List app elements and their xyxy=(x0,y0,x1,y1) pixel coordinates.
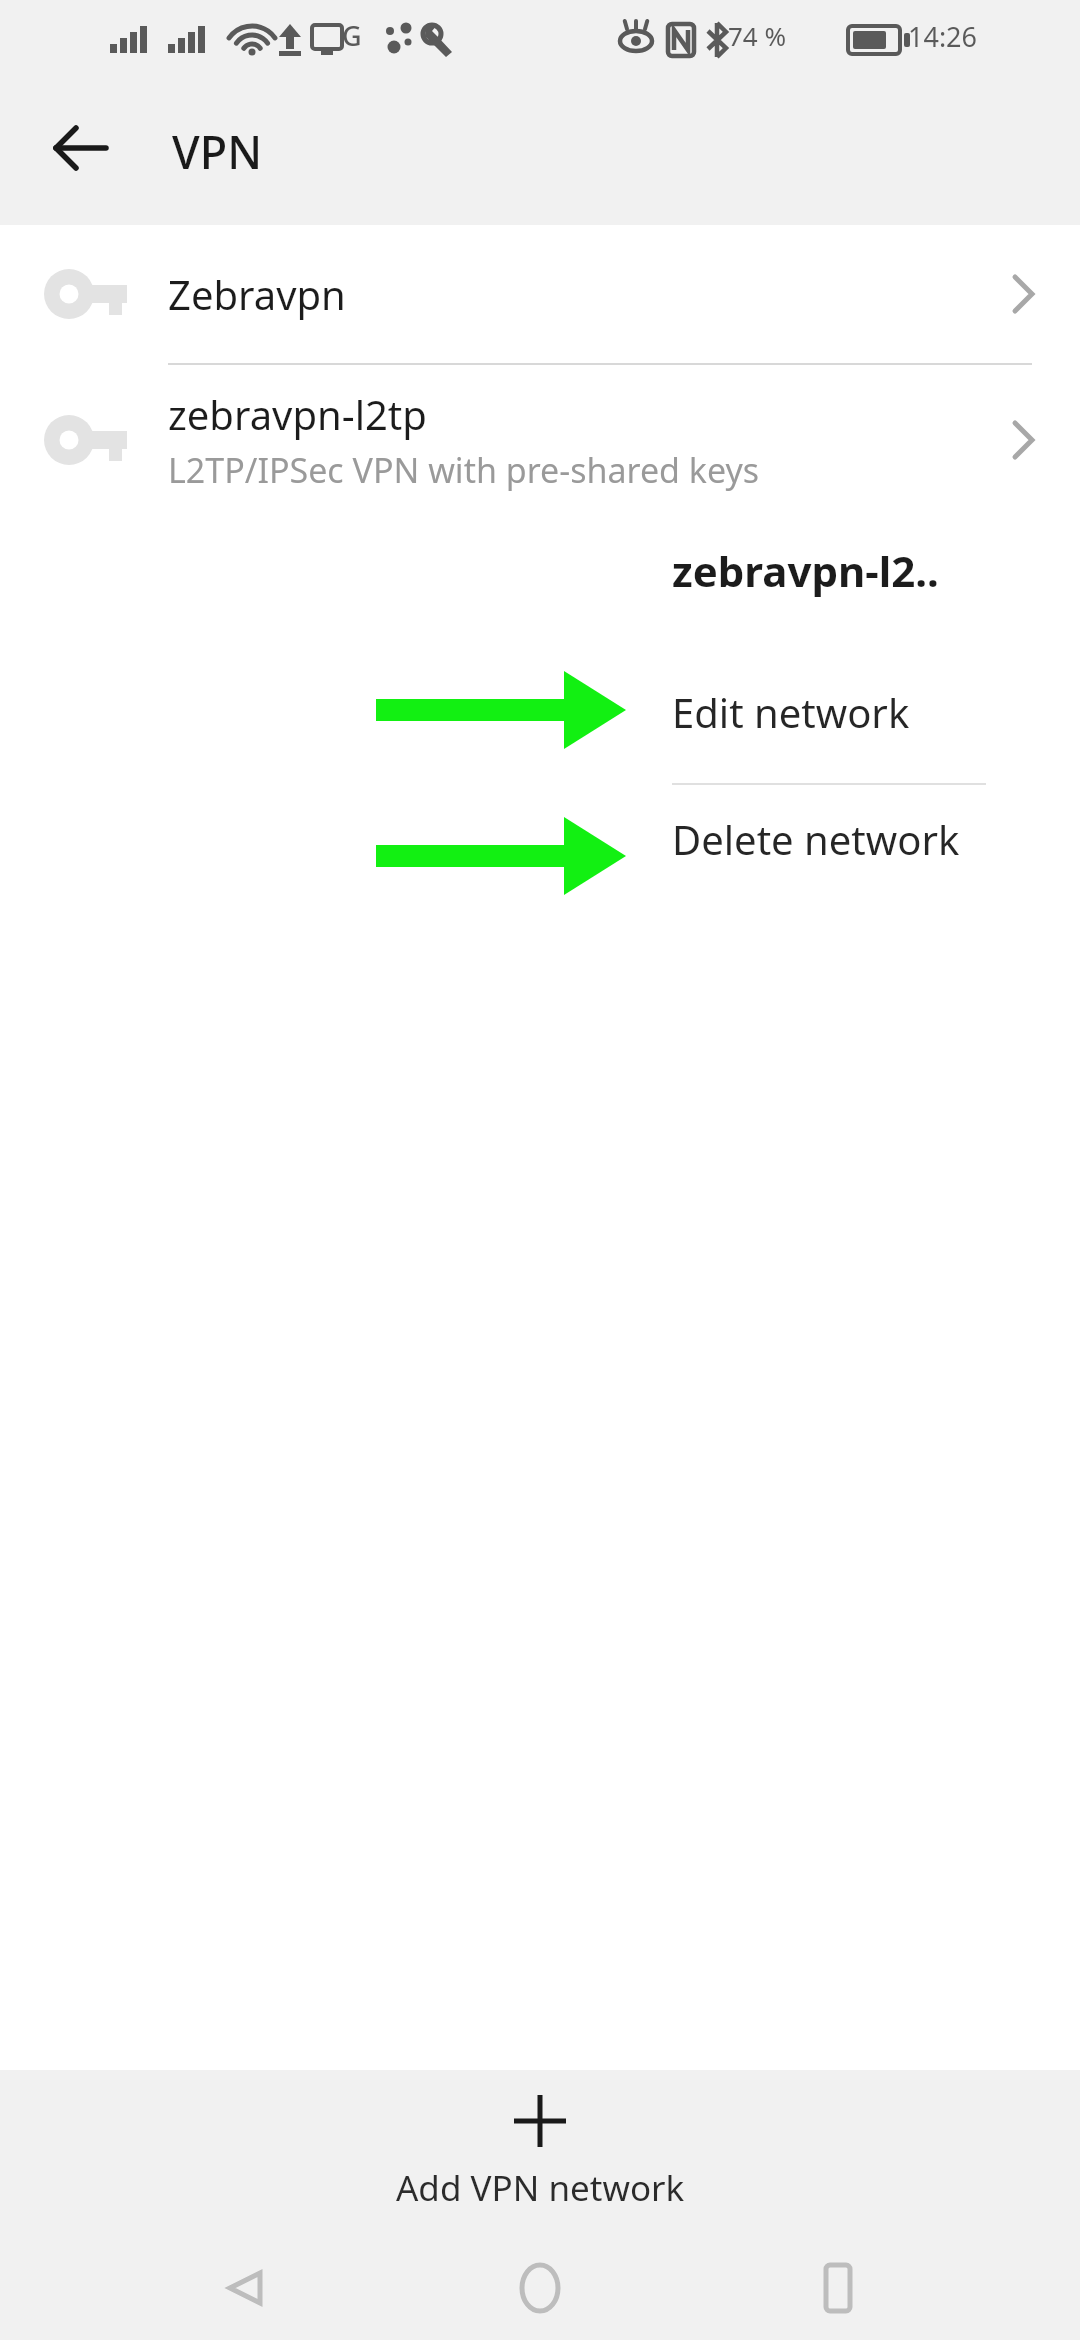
button[interactable]: zebravpn-l2tp xyxy=(0,365,1080,515)
button[interactable]: Back xyxy=(188,2235,298,2340)
staticText: Edit network xyxy=(672,685,910,739)
staticText: 74 % xyxy=(728,18,787,53)
staticText: VPN xyxy=(172,121,263,182)
button[interactable]: Zebravpn xyxy=(0,225,1080,363)
button[interactable]: Recent apps xyxy=(783,2235,893,2340)
button[interactable]: Add VPN network xyxy=(0,2070,1080,2235)
button[interactable]: Edit network xyxy=(626,640,1032,783)
staticText: G xyxy=(342,17,362,54)
staticText: zebravpn-l2tp xyxy=(168,387,427,441)
staticText: Add VPN network xyxy=(396,2164,685,2212)
staticText: 14:26 xyxy=(908,18,978,55)
button[interactable]: Back xyxy=(36,104,124,192)
staticText: Zebravpn xyxy=(168,267,346,321)
staticText: L2TP/IPSec VPN with pre-shared keys xyxy=(168,447,760,493)
staticText: zebravpn-l2.. xyxy=(672,542,939,599)
staticText: Delete network xyxy=(672,812,960,866)
button[interactable]: Home xyxy=(485,2235,595,2340)
button[interactable]: Delete network xyxy=(626,785,1032,925)
